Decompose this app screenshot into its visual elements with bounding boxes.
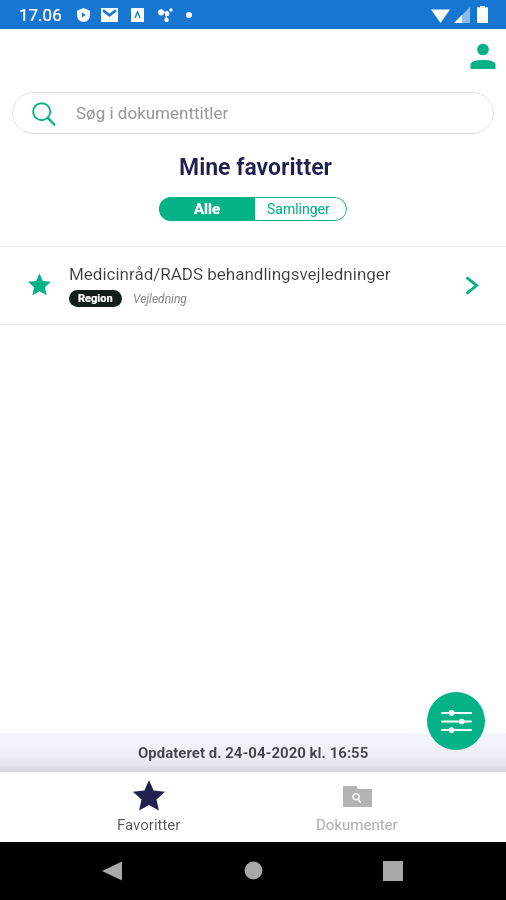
staticText: Medicinråd/RADS behandlingsvejledninger [69,264,391,284]
button[interactable]: Samlinger [255,197,347,221]
button[interactable]: Dokumenter [253,772,461,842]
staticText: Søg i dokumenttitler [76,103,229,123]
staticText: Region [78,292,113,305]
button[interactable]: Medicinråd/RADS behandlingsvejledninger [0,247,506,324]
staticText: Opdateret d. 24-04-2020 kl. 16:55 [138,744,369,762]
staticText: Dokumenter [316,816,398,834]
button[interactable]: Alle [159,197,255,221]
button[interactable]: Filter [427,692,485,750]
button[interactable]: Favoritter [45,772,253,842]
staticText: Favoritter [117,816,181,834]
staticText: 17.06 [19,5,62,25]
button[interactable]: Profile [460,33,506,79]
staticText: Samlinger [267,201,330,217]
button[interactable]: Home [244,861,263,880]
button[interactable]: Back [102,861,122,881]
staticText: Mine favoritter [5,154,506,181]
button[interactable]: Søg i dokumenttitler [12,92,494,134]
staticText: Alle [194,200,221,218]
staticText: Vejledning [133,292,187,306]
